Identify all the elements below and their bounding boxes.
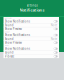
button[interactable]: Vibrate — [3, 55, 59, 58]
button[interactable]: Show Notifications — [3, 47, 59, 50]
staticText: Sound — [5, 37, 14, 41]
button[interactable]: Show Preview — [3, 41, 59, 44]
staticText: Show Preview — [5, 27, 22, 31]
button[interactable]: Sound — [3, 37, 59, 41]
staticText: Note — [51, 37, 58, 41]
staticText: Vibrate — [5, 55, 15, 58]
staticText: Notifications — [19, 7, 44, 12]
staticText: GROUP — [5, 31, 10, 33]
staticText: Settings — [26, 4, 37, 7]
button[interactable]: Sound — [3, 51, 59, 54]
staticText: Show Notifications — [5, 20, 30, 23]
staticText: Show Notifications — [5, 47, 30, 50]
staticText: MESSAGE — [5, 17, 12, 19]
button[interactable]: Sound — [3, 23, 59, 27]
button[interactable]: Show Notifications — [3, 20, 59, 23]
button[interactable]: Show Notifications — [3, 33, 59, 37]
staticText: Note — [51, 23, 58, 27]
staticText: Sound — [5, 51, 14, 54]
staticText: Show Notifications — [5, 33, 30, 37]
staticText: Show Preview — [5, 41, 22, 44]
button[interactable]: Show Preview — [3, 27, 59, 31]
staticText: Sound — [5, 23, 14, 27]
staticText: IN-APP — [5, 45, 9, 47]
